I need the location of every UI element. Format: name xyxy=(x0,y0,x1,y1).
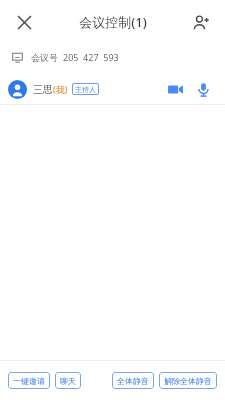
button[interactable]: 解除全体静音 xyxy=(159,372,217,389)
button[interactable]: Add participant xyxy=(185,6,217,38)
button[interactable]: 会议号 xyxy=(0,44,225,70)
staticText: 全体静音 xyxy=(117,376,149,386)
button[interactable]: Camera on xyxy=(163,77,187,101)
staticText: 205 427 593 xyxy=(63,51,119,63)
button[interactable]: Microphone on xyxy=(191,77,215,101)
staticText: 三思 xyxy=(33,83,53,96)
staticText: 解除全体静音 xyxy=(164,376,212,386)
button[interactable]: 聊天 xyxy=(55,372,81,389)
staticText: 一键邀请 xyxy=(13,376,45,386)
button[interactable]: 全体静音 xyxy=(112,372,154,389)
button[interactable]: 一键邀请 xyxy=(8,372,50,389)
staticText: 会议号 xyxy=(31,52,58,63)
button[interactable]: 三思 xyxy=(0,74,225,104)
staticText: 主持人 xyxy=(75,85,96,94)
staticText: 聊天 xyxy=(60,376,76,386)
staticText: 会议控制(1) xyxy=(79,13,147,31)
staticText: (我) xyxy=(53,83,68,95)
button[interactable]: Close xyxy=(8,6,40,38)
